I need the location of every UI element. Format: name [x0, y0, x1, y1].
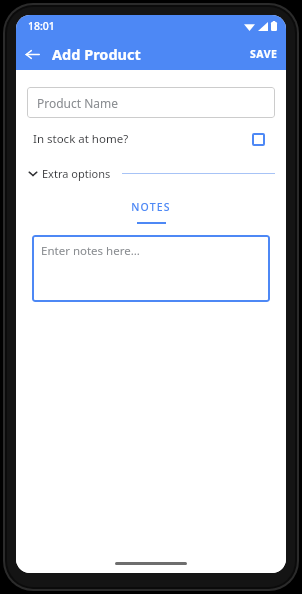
button[interactable]: Product Name [27, 87, 275, 118]
staticText: Add Product [52, 44, 141, 64]
other: In stock at home checkbox [252, 133, 265, 146]
button[interactable]: Enter notes here… [32, 235, 270, 302]
staticText: Enter notes here… [41, 243, 140, 259]
staticText: NOTES [131, 200, 171, 214]
staticText: In stock at home? [33, 131, 129, 147]
staticText: Product Name [37, 95, 119, 111]
button[interactable]: Back [16, 38, 48, 70]
staticText: Extra options [42, 166, 111, 181]
button[interactable]: NOTES [117, 197, 185, 224]
staticText: 18:01 [28, 19, 55, 33]
button[interactable]: In stock at home? [27, 126, 275, 152]
button[interactable]: Extra options [27, 164, 275, 182]
staticText: SAVE [250, 47, 278, 61]
button[interactable]: SAVE [242, 37, 286, 70]
